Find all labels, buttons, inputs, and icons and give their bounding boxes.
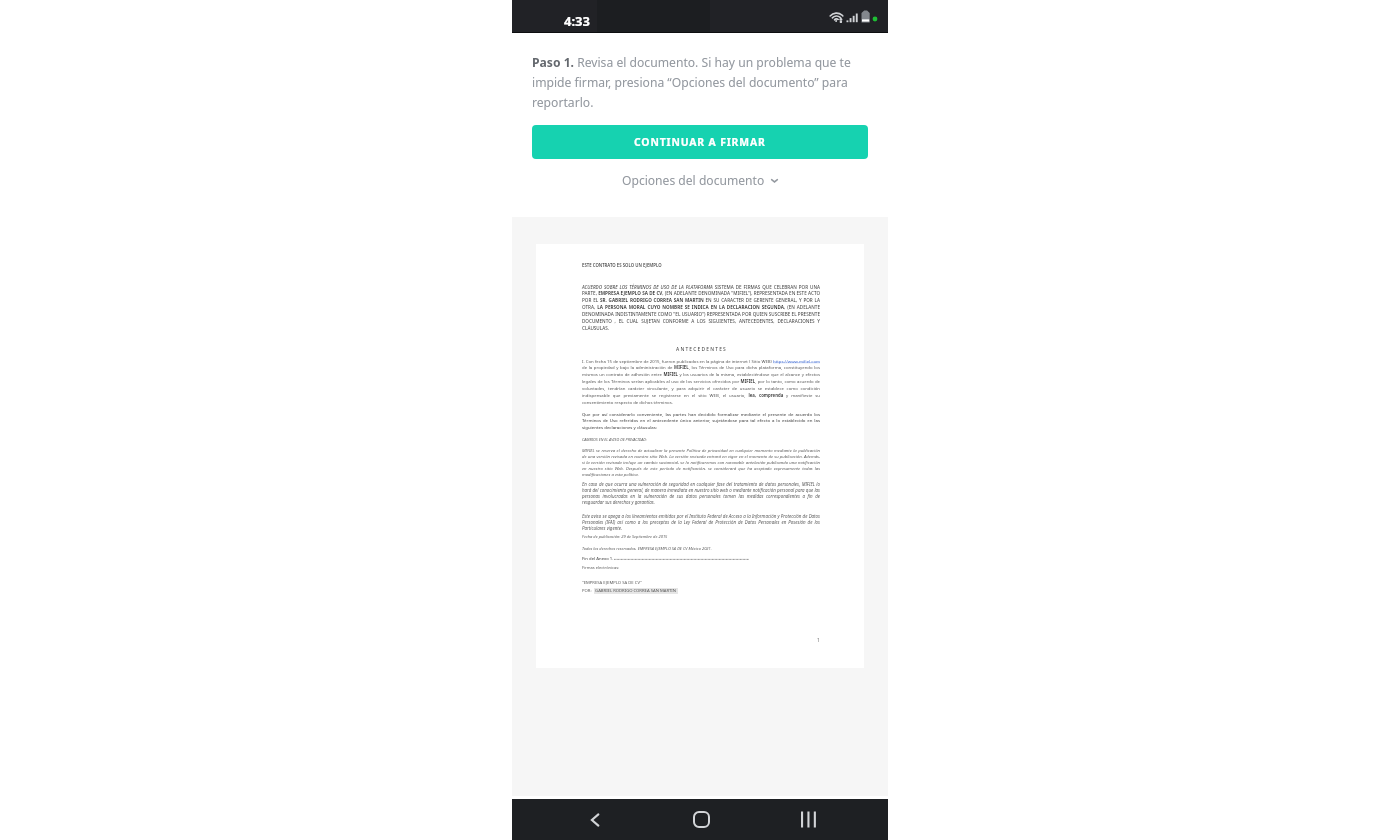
staticText: 1 (817, 637, 820, 643)
staticText: Que por así considerarlo conveniente, la… (582, 411, 820, 431)
staticText: Firmas electrónicas: (582, 565, 620, 570)
staticText: CAMBIOS EN EL AVISO DE PRIVACIDAD: (582, 437, 647, 442)
staticText: POR: (582, 588, 594, 594)
staticText: Todos los derechos reservados, EMPRESA E… (582, 546, 712, 551)
button[interactable]: Back (570, 799, 620, 840)
staticText: GABRIEL RODRIGO CORREA SAN MARTIN (594, 588, 678, 594)
button[interactable]: Recent apps (783, 799, 833, 840)
staticText: I. Con fecha 15 de septiembre de 2015, f… (582, 358, 820, 406)
staticText: En caso de que ocurra una vulneración de… (582, 481, 820, 505)
staticText: CONTINUAR A FIRMAR (634, 135, 766, 149)
staticText: Fecha de publicación: 29 de Septiembre d… (582, 534, 668, 539)
staticText: ANTECEDENTES (676, 346, 727, 353)
staticText: 4:33 (564, 12, 590, 30)
staticText: Fin del Anexo 1. (582, 556, 614, 562)
staticText: "EMPRESA EJEMPLO SA DE CV" (582, 580, 642, 586)
staticText: ESTE CONTRATO ES SOLO UN EJEMPLO (582, 262, 662, 268)
button[interactable]: Opciones del documento (512, 169, 888, 191)
button[interactable]: CONTINUAR A FIRMAR (532, 125, 868, 159)
staticText: ACUERDO SOBRE LOS TÉRMINOS DE USO DE LA … (582, 284, 820, 332)
button[interactable]: Home (676, 799, 726, 840)
staticText: Paso 1. Revisa el documento. Si hay un p… (532, 54, 871, 110)
staticText: Opciones del documento (622, 172, 765, 188)
staticText: Este aviso se apega a los lineamientos e… (582, 513, 820, 531)
staticText: MIFIEL se reserva el derecho de actualiz… (582, 447, 820, 477)
